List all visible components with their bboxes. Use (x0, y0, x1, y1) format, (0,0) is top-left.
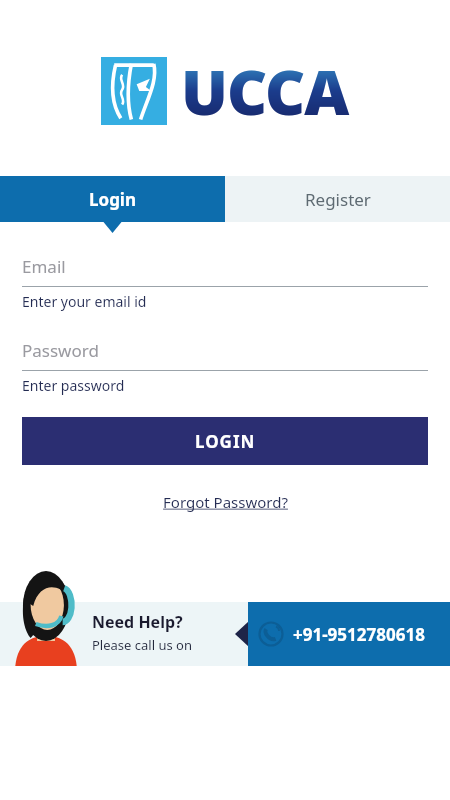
staticText: Enter password (22, 376, 125, 395)
staticText: Login (89, 188, 137, 211)
button[interactable]: Register (225, 176, 450, 222)
staticText: Please call us on (92, 636, 192, 654)
staticText: LOGIN (195, 430, 256, 453)
staticText: Password (22, 339, 99, 362)
staticText: Register (305, 188, 371, 211)
staticText: UCCA (181, 49, 349, 133)
button[interactable]: LOGIN (22, 417, 428, 465)
staticText: Need Help? (92, 611, 183, 633)
staticText: Enter your email id (22, 292, 147, 311)
button[interactable]: Forgot Password? (163, 492, 288, 512)
staticText: +91-9512780618 (293, 623, 425, 646)
staticText: Email (22, 255, 66, 278)
button[interactable]: Login (0, 176, 225, 222)
button[interactable]: Call +91-9512780618 (248, 602, 450, 666)
